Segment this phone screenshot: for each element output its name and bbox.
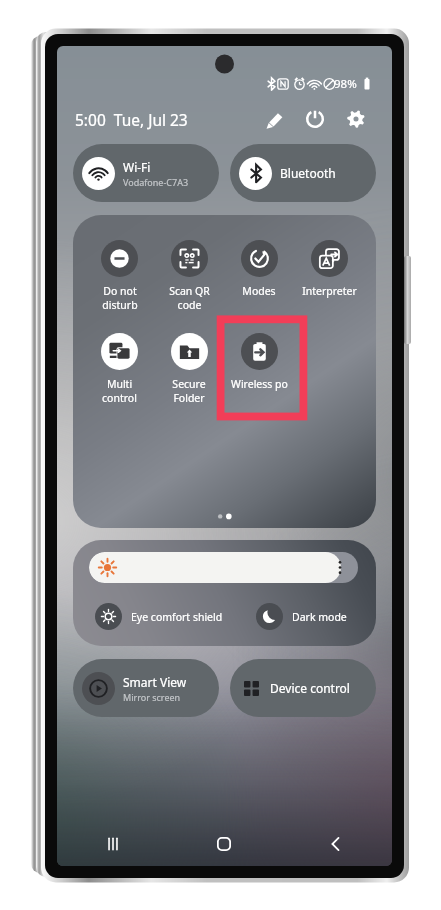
button[interactable]: Wi-Fi — [73, 144, 219, 202]
staticText: Wi-Fi — [123, 159, 151, 175]
button[interactable]: Back — [280, 822, 392, 866]
staticText: Smart View — [123, 674, 187, 690]
button[interactable]: Edit — [261, 106, 287, 132]
button[interactable]: Smart View — [73, 659, 219, 717]
button[interactable]: Eye comfort shield — [95, 603, 223, 630]
staticText: Bluetooth — [280, 165, 336, 181]
button[interactable]: Bluetooth — [230, 144, 376, 202]
staticText: Eye comfort shield — [131, 610, 223, 624]
button[interactable]: Interpreter — [294, 240, 364, 298]
button[interactable]: Settings — [343, 106, 369, 132]
button[interactable]: Device control — [230, 659, 376, 717]
button[interactable]: Home — [168, 822, 280, 866]
button[interactable]: Do not disturb — [85, 240, 154, 312]
button[interactable]: Wireless po — [224, 333, 294, 391]
button[interactable]: Multi control — [85, 333, 154, 405]
button[interactable]: Scan QR code — [154, 240, 224, 312]
staticText: Modes — [242, 284, 276, 298]
staticText: Multi control — [102, 377, 137, 405]
staticText: Scan QR code — [169, 284, 210, 312]
button[interactable]: Power — [302, 106, 328, 132]
staticText: Secure Folder — [172, 377, 206, 405]
button[interactable] — [89, 552, 358, 583]
button[interactable]: Dark mode — [256, 603, 347, 630]
staticText: Dark mode — [292, 610, 347, 624]
staticText: Vodafone-C7A3 — [123, 176, 189, 188]
button[interactable]: Recents — [57, 822, 168, 866]
staticText: Do not disturb — [102, 284, 138, 312]
staticText: 98% — [334, 76, 357, 92]
staticText: Wireless po — [231, 377, 288, 391]
button[interactable]: Secure Folder — [154, 333, 224, 405]
staticText: 5:00 Tue, Jul 23 — [75, 109, 188, 130]
button[interactable]: Modes — [224, 240, 294, 298]
staticText: Interpreter — [302, 284, 357, 298]
staticText: Device control — [270, 680, 350, 696]
staticText: Mirror screen — [123, 691, 181, 703]
